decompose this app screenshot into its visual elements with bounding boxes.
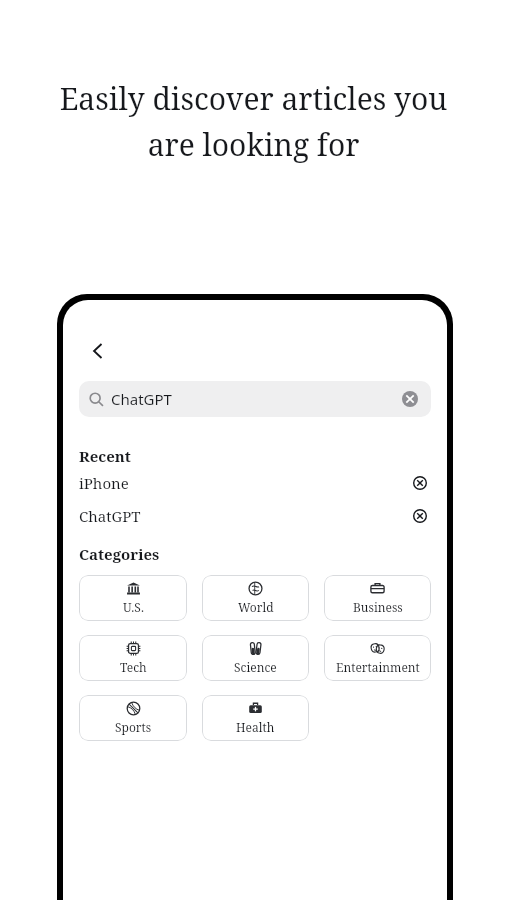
button[interactable]: Remove ChatGPT from recent <box>409 505 431 527</box>
button[interactable]: Entertainment <box>324 635 431 681</box>
button[interactable]: Sports <box>79 695 187 741</box>
staticText: Categories <box>79 544 160 564</box>
button[interactable]: Tech <box>79 635 187 681</box>
staticText: ChatGPT <box>79 506 141 526</box>
staticText: Easily discover articles you are looking… <box>34 78 473 165</box>
button[interactable]: Remove iPhone from recent <box>409 472 431 494</box>
staticText: Entertainment <box>336 659 420 675</box>
staticText: U.S. <box>123 599 144 615</box>
staticText: Science <box>234 659 277 675</box>
staticText: Recent <box>79 446 131 466</box>
staticText: iPhone <box>79 473 129 493</box>
button[interactable]: Back <box>77 330 119 372</box>
staticText: Sports <box>115 719 152 735</box>
button[interactable]: Science <box>202 635 309 681</box>
button[interactable]: Clear search <box>399 388 421 410</box>
staticText: World <box>238 599 274 615</box>
button[interactable]: Health <box>202 695 309 741</box>
button[interactable]: iPhone <box>63 466 447 499</box>
button[interactable]: ChatGPT <box>79 381 431 417</box>
button[interactable]: World <box>202 575 309 621</box>
button[interactable]: ChatGPT <box>63 499 447 532</box>
button[interactable]: Business <box>324 575 431 621</box>
button[interactable]: U.S. <box>79 575 187 621</box>
staticText: Business <box>353 599 403 615</box>
staticText: ChatGPT <box>111 389 172 409</box>
staticText: Health <box>236 719 275 735</box>
staticText: Tech <box>120 659 147 675</box>
